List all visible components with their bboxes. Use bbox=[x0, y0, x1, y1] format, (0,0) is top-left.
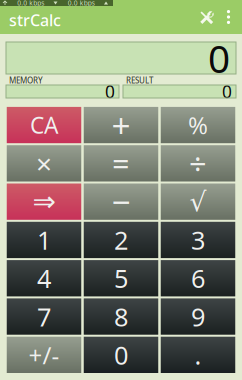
staticText: 6 bbox=[191, 261, 205, 295]
staticText: ÷ bbox=[189, 143, 207, 184]
button[interactable]: = bbox=[84, 145, 158, 181]
staticText: √ bbox=[189, 186, 206, 217]
button[interactable]: 0 bbox=[84, 337, 158, 373]
staticText: 3 bbox=[191, 223, 205, 257]
button[interactable]: ⇒ bbox=[7, 183, 81, 220]
staticText: × bbox=[36, 145, 52, 182]
staticText: ⇒ bbox=[32, 186, 55, 218]
button[interactable]: CA bbox=[7, 107, 81, 143]
button[interactable]: 6 bbox=[161, 260, 235, 296]
button[interactable]: 1 bbox=[7, 222, 81, 258]
button[interactable]: Tools bbox=[194, 6, 220, 34]
button[interactable]: More options bbox=[220, 6, 237, 34]
staticText: % bbox=[188, 109, 208, 141]
button[interactable]: 2 bbox=[84, 222, 158, 258]
button[interactable]: 9 bbox=[161, 298, 235, 335]
staticText: +/- bbox=[28, 339, 59, 371]
staticText: 0 bbox=[208, 32, 230, 84]
button[interactable]: % bbox=[161, 107, 235, 143]
staticText: − bbox=[111, 179, 130, 224]
staticText: 7 bbox=[37, 300, 51, 333]
button[interactable]: ÷ bbox=[161, 145, 235, 181]
button[interactable]: − bbox=[84, 183, 158, 220]
staticText: 9 bbox=[191, 300, 205, 333]
button[interactable]: . bbox=[161, 337, 235, 373]
staticText: 0 bbox=[105, 80, 115, 103]
button[interactable]: + bbox=[84, 107, 158, 143]
button[interactable]: 3 bbox=[161, 222, 235, 258]
button[interactable]: 4 bbox=[7, 260, 81, 296]
staticText: 4 bbox=[37, 261, 51, 295]
staticText: . bbox=[194, 338, 201, 372]
staticText: + bbox=[111, 103, 130, 147]
button[interactable]: 5 bbox=[84, 260, 158, 296]
button[interactable]: 8 bbox=[84, 298, 158, 335]
staticText: 0 bbox=[114, 338, 128, 372]
staticText: 0 bbox=[222, 80, 232, 103]
staticText: 1 bbox=[37, 223, 51, 257]
button[interactable]: √ bbox=[161, 183, 235, 220]
button[interactable]: × bbox=[7, 145, 81, 181]
button[interactable]: 7 bbox=[7, 298, 81, 335]
button[interactable]: +/- bbox=[7, 337, 81, 373]
staticText: MEMORY bbox=[9, 75, 43, 86]
staticText: 5 bbox=[114, 261, 128, 295]
staticText: 8 bbox=[114, 300, 128, 333]
staticText: 2 bbox=[114, 223, 128, 257]
staticText: = bbox=[112, 143, 130, 184]
staticText: CA bbox=[30, 110, 58, 140]
staticText: 0.0 kbps bbox=[17, 0, 44, 7]
staticText: strCalc bbox=[9, 9, 61, 31]
staticText: RESULT bbox=[126, 75, 153, 86]
staticText: 0.0 kbps bbox=[68, 0, 95, 7]
